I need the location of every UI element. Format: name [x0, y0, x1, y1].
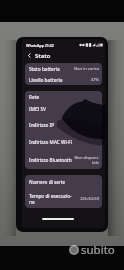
- button[interactable]: Livello batteria: [25, 75, 102, 85]
- staticText: Stato: [35, 52, 51, 60]
- button[interactable]: Tempo di esecuzio- ne: [25, 189, 102, 208]
- staticText: Indirizzo IP: [29, 122, 55, 128]
- staticText: Non disponi- bile: [74, 155, 99, 165]
- button[interactable]: Indirizzo IP: [25, 115, 102, 134]
- button[interactable]: Indirizzo Bluetooth: [25, 150, 102, 169]
- button[interactable]: Rete: [25, 91, 102, 102]
- button[interactable]: Indirizzo MAC Wi-Fi: [25, 134, 102, 150]
- staticText: 22h:52:59: [80, 196, 99, 202]
- staticText: Indirizzo MAC Wi-Fi: [29, 139, 72, 145]
- staticText: IMEI SV: [29, 106, 46, 112]
- staticText: Non in carica: [73, 66, 99, 72]
- staticText: Indirizzo Bluetooth: [29, 157, 72, 163]
- staticText: Numero di serie: [29, 179, 65, 185]
- button[interactable]: Stato batteria: [25, 63, 102, 75]
- staticText: 47%: [90, 77, 99, 83]
- staticText: Tempo di esecuzio- ne: [29, 193, 72, 205]
- button[interactable]: IMEI SV: [25, 102, 102, 115]
- staticText: subito: [81, 242, 115, 258]
- staticText: Livello batteria: [29, 77, 63, 83]
- staticText: Rete: [29, 94, 40, 100]
- staticText: WhatsApp 21:22: [26, 43, 54, 48]
- button[interactable]: Back: [25, 51, 34, 60]
- button[interactable]: Numero di serie: [25, 175, 102, 189]
- staticText: Stato batteria: [29, 66, 60, 72]
